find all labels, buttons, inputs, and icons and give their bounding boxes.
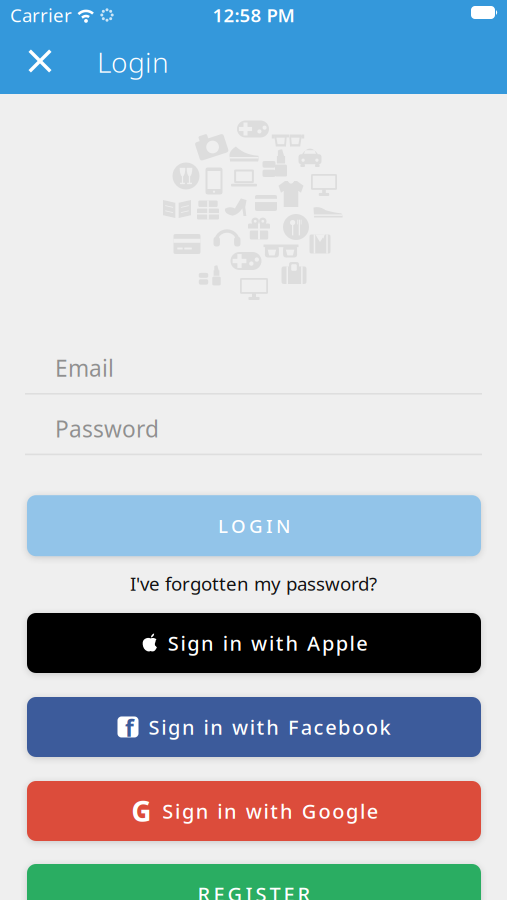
- staticText: Sign in with Google: [162, 798, 378, 824]
- button[interactable]: LOGIN: [0, 495, 507, 556]
- staticText: Password: [55, 413, 159, 444]
- button[interactable]: Sign in with Apple: [0, 613, 507, 673]
- button[interactable]: Close: [0, 30, 62, 94]
- staticText: f: [125, 713, 134, 743]
- staticText: Login: [97, 43, 169, 81]
- button[interactable]: f: [0, 697, 507, 757]
- staticText: G: [131, 792, 151, 830]
- button[interactable]: I've forgotten my password?: [130, 571, 377, 596]
- button[interactable]: REGISTER: [0, 864, 507, 900]
- staticText: Carrier: [10, 3, 72, 27]
- staticText: REGISTER: [197, 881, 310, 900]
- staticText: Sign in with Apple: [168, 630, 367, 656]
- button[interactable]: Email text field: [0, 334, 507, 395]
- staticText: 12:58 PM: [212, 3, 294, 27]
- button[interactable]: Password text field: [0, 395, 507, 455]
- staticText: I've forgotten my password?: [130, 571, 377, 596]
- staticText: Sign in with Facebook: [148, 714, 390, 740]
- staticText: Email: [55, 353, 114, 383]
- button[interactable]: G: [0, 781, 507, 841]
- staticText: LOGIN: [218, 513, 290, 538]
